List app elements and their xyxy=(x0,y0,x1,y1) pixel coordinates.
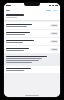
button[interactable] xyxy=(4,66,60,73)
button[interactable] xyxy=(4,54,60,65)
button[interactable]: Open item xyxy=(50,40,58,43)
button[interactable]: Search xyxy=(46,10,51,11)
button[interactable]: Open item xyxy=(4,22,60,29)
button[interactable]: Open item xyxy=(50,48,58,51)
button[interactable]: Open item xyxy=(50,32,58,35)
button[interactable]: Open item xyxy=(4,30,60,37)
button[interactable]: Open item xyxy=(50,24,58,27)
button[interactable]: Open item xyxy=(4,38,60,45)
button[interactable]: Open item xyxy=(4,46,60,53)
button[interactable]: Menu xyxy=(6,10,10,11)
button[interactable]: Profile xyxy=(53,10,58,11)
